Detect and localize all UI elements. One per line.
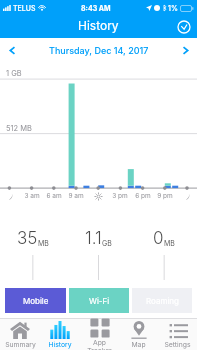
staticText: Summary	[5, 340, 36, 348]
staticText: TELUS	[13, 4, 36, 12]
button[interactable]: Previous day	[3, 41, 21, 59]
button[interactable]: Summary	[0, 319, 40, 350]
button[interactable]: Next day	[176, 41, 194, 59]
staticText: Mobile	[23, 296, 49, 306]
staticText: 9 pm	[153, 192, 177, 200]
staticText: 9 am	[64, 192, 88, 200]
button[interactable]: Thursday, Dec 14, 2017	[49, 45, 149, 56]
staticText: 1.1	[85, 228, 102, 249]
staticText: 0	[153, 228, 164, 249]
staticText: App Tracker	[80, 338, 119, 350]
button[interactable]: Roaming	[132, 288, 192, 313]
button[interactable]: Map	[119, 319, 158, 350]
staticText: GB	[102, 239, 112, 247]
button[interactable]: App Tracker	[80, 319, 119, 350]
button[interactable]: Time range	[175, 18, 193, 36]
button[interactable]: History	[40, 319, 80, 350]
staticText: History	[48, 340, 72, 348]
staticText: Wi-Fi	[89, 296, 110, 306]
staticText: 3 pm	[108, 192, 132, 200]
staticText: 512 MB	[6, 124, 32, 133]
staticText: Settings	[164, 340, 191, 348]
staticText: MB	[164, 239, 175, 247]
staticText: Roaming	[146, 296, 179, 306]
button[interactable]: Wi-Fi	[69, 288, 129, 313]
staticText: 6 pm	[131, 192, 155, 200]
button[interactable]: Mobile	[5, 288, 66, 313]
staticText: MB	[38, 239, 49, 247]
staticText: History	[78, 18, 119, 33]
staticText: 1 GB	[6, 69, 22, 78]
staticText: Map	[131, 340, 146, 348]
staticText: 1%	[168, 4, 178, 12]
button[interactable]: Settings	[158, 319, 197, 350]
staticText: 3 am	[20, 192, 44, 200]
staticText: 6 am	[42, 192, 66, 200]
staticText: 8:43 AM	[81, 4, 111, 12]
staticText: 35	[17, 228, 38, 249]
